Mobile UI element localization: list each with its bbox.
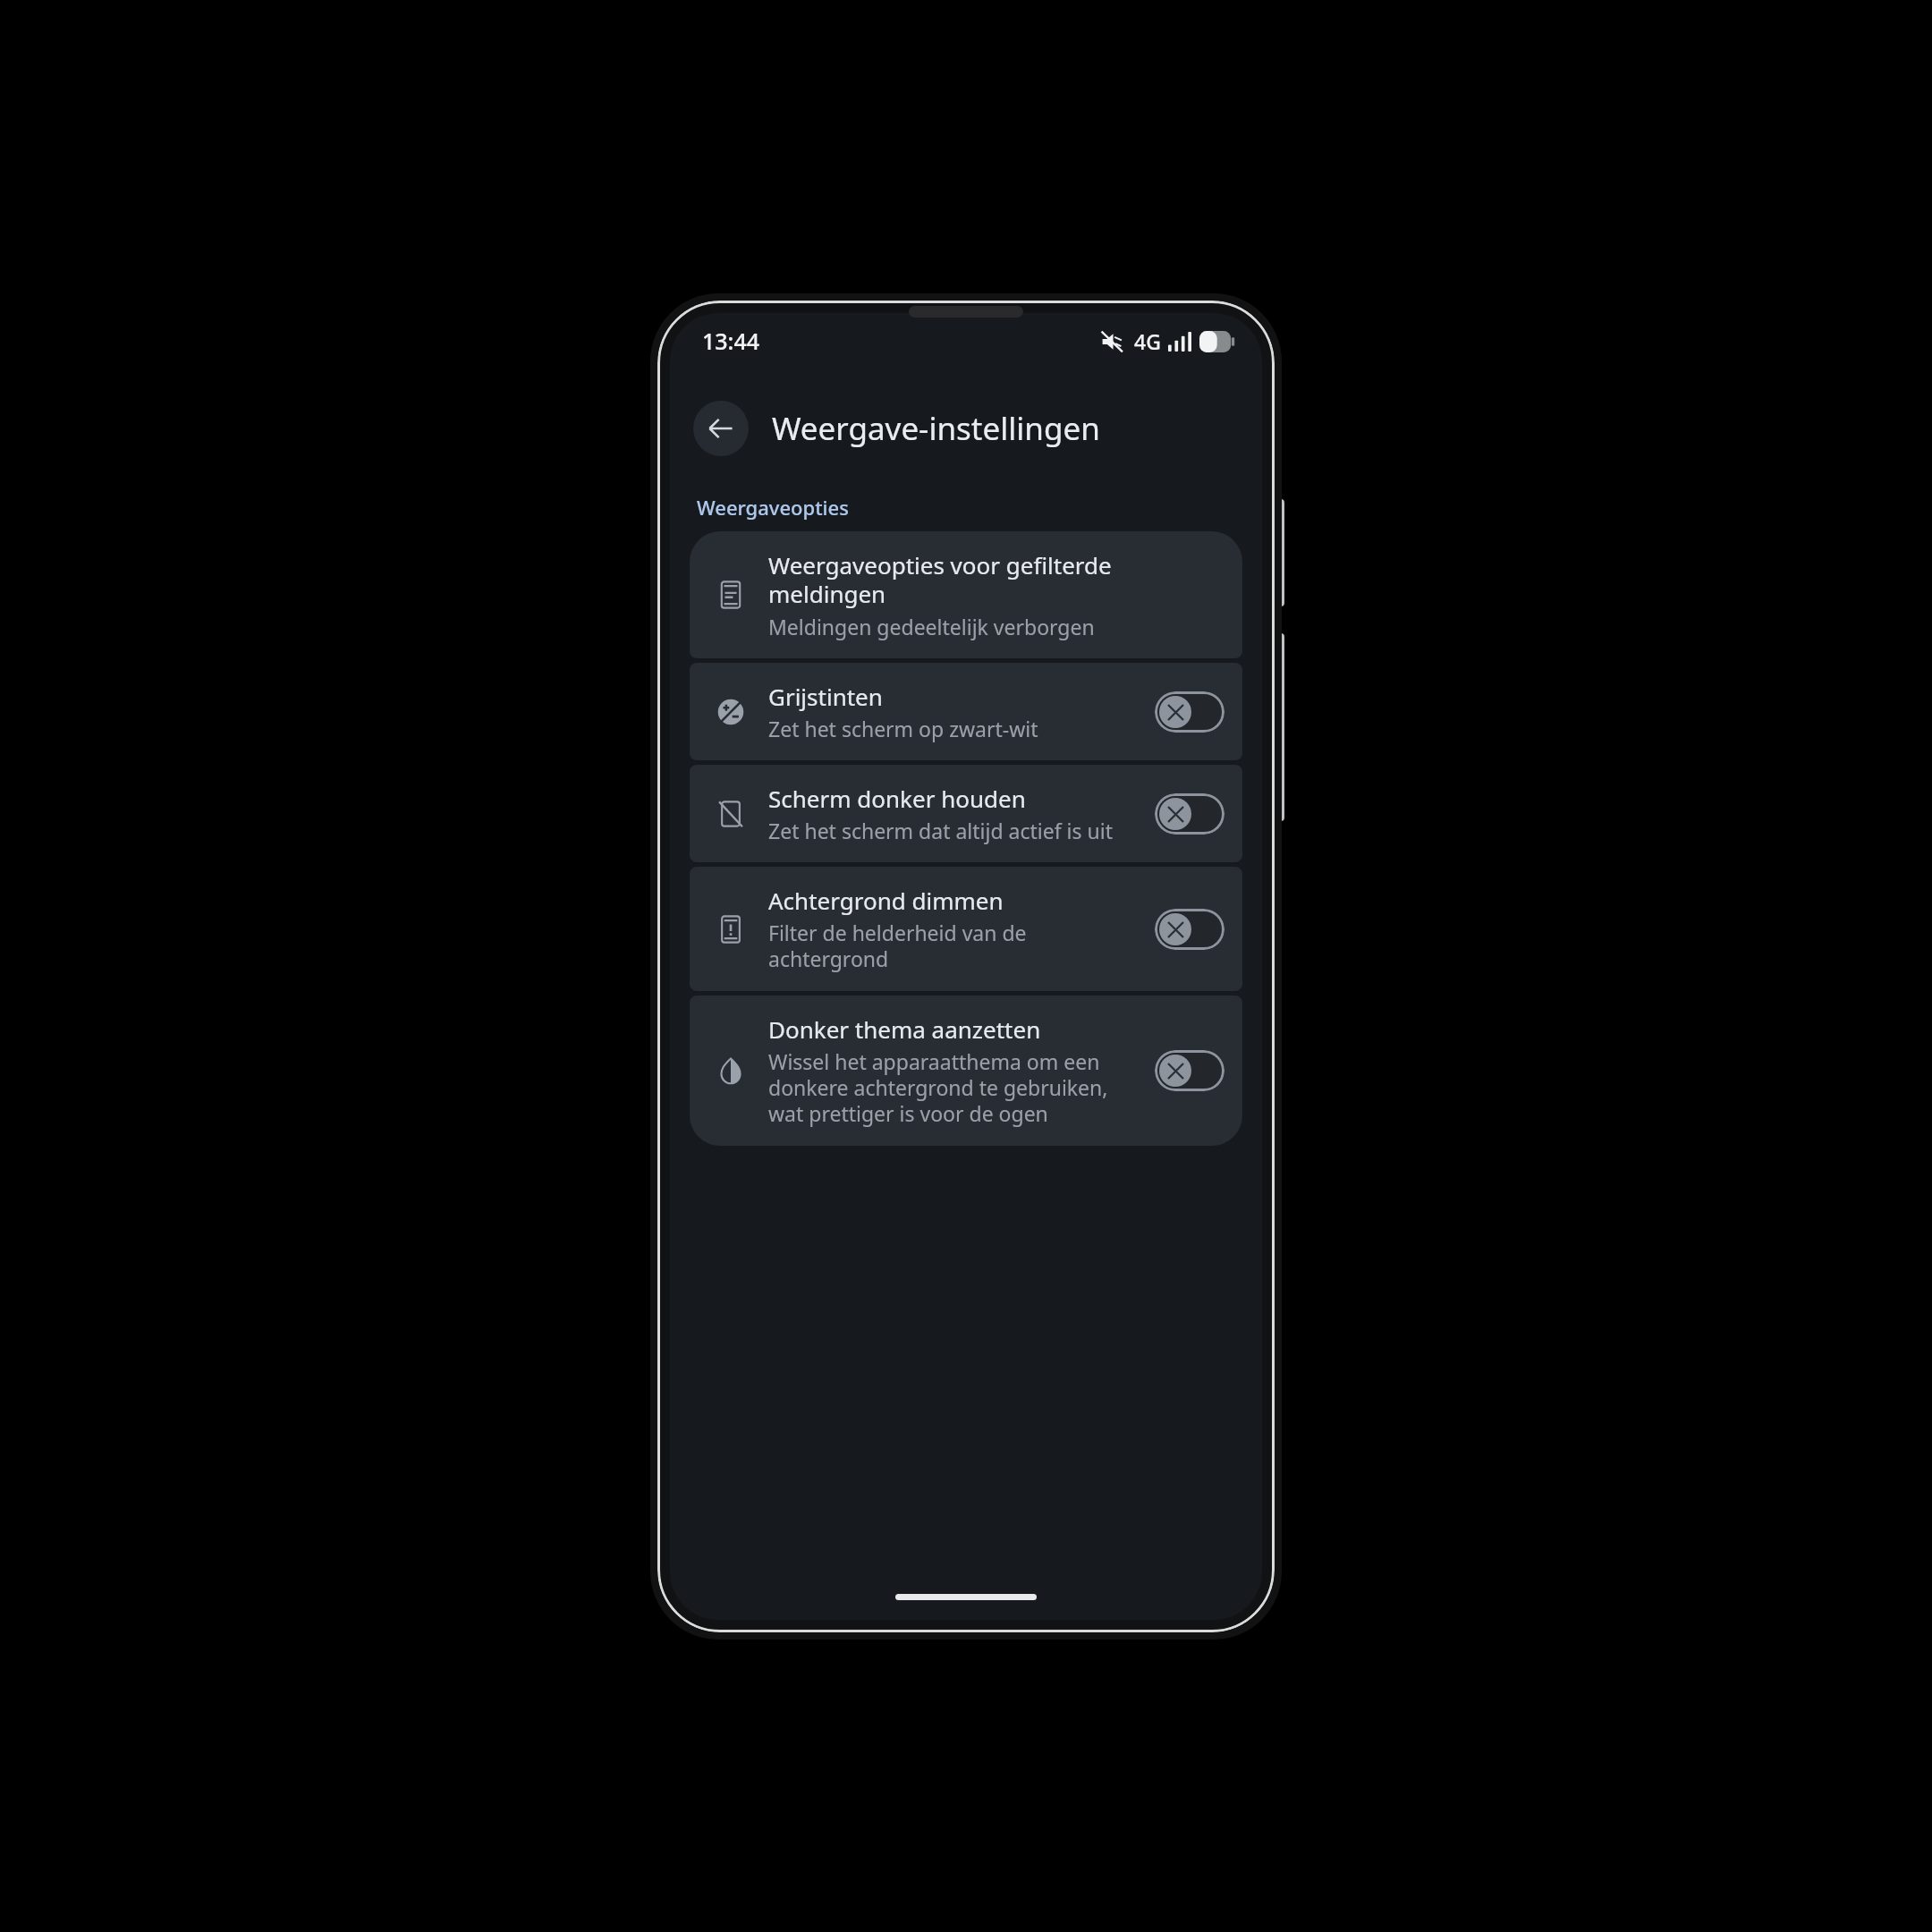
staticText: Meldingen gedeeltelijk verborgen xyxy=(768,613,1095,640)
staticText: 13:44 xyxy=(702,326,760,356)
staticText: Zet het scherm op zwart-wit xyxy=(768,715,1038,742)
button[interactable]: Donker thema aanzetten xyxy=(690,996,1242,1146)
button[interactable]: Weergaveopties voor gefilterde meldingen xyxy=(690,531,1242,658)
staticText: Scherm donker houden xyxy=(768,783,1026,814)
staticText: Achtergrond dimmen xyxy=(768,885,1004,916)
staticText: Filter de helderheid van de achtergrond xyxy=(768,919,1142,973)
staticText: Wissel het apparaatthema om een donkere … xyxy=(768,1047,1142,1128)
button[interactable]: Achtergrond dimmen xyxy=(690,867,1242,991)
button[interactable]: Grijstinten xyxy=(690,663,1242,760)
staticText: Weergaveopties voor gefilterde meldingen xyxy=(768,549,1224,610)
staticText: Weergave-instellingen xyxy=(772,407,1100,450)
staticText: Donker thema aanzetten xyxy=(768,1013,1041,1045)
staticText: Zet het scherm dat altijd actief is uit xyxy=(768,817,1113,844)
button[interactable]: Aan/uit xyxy=(1155,909,1224,950)
button[interactable]: Aan/uit xyxy=(1155,691,1224,733)
staticText: 4G xyxy=(1134,327,1161,355)
button[interactable]: Scherm donker houden xyxy=(690,765,1242,862)
staticText: Weergaveopties xyxy=(697,494,849,521)
staticText: Grijstinten xyxy=(768,681,883,712)
button[interactable]: Aan/uit xyxy=(1155,1050,1224,1091)
button[interactable]: Terug xyxy=(693,401,749,456)
button[interactable]: Aan/uit xyxy=(1155,793,1224,835)
